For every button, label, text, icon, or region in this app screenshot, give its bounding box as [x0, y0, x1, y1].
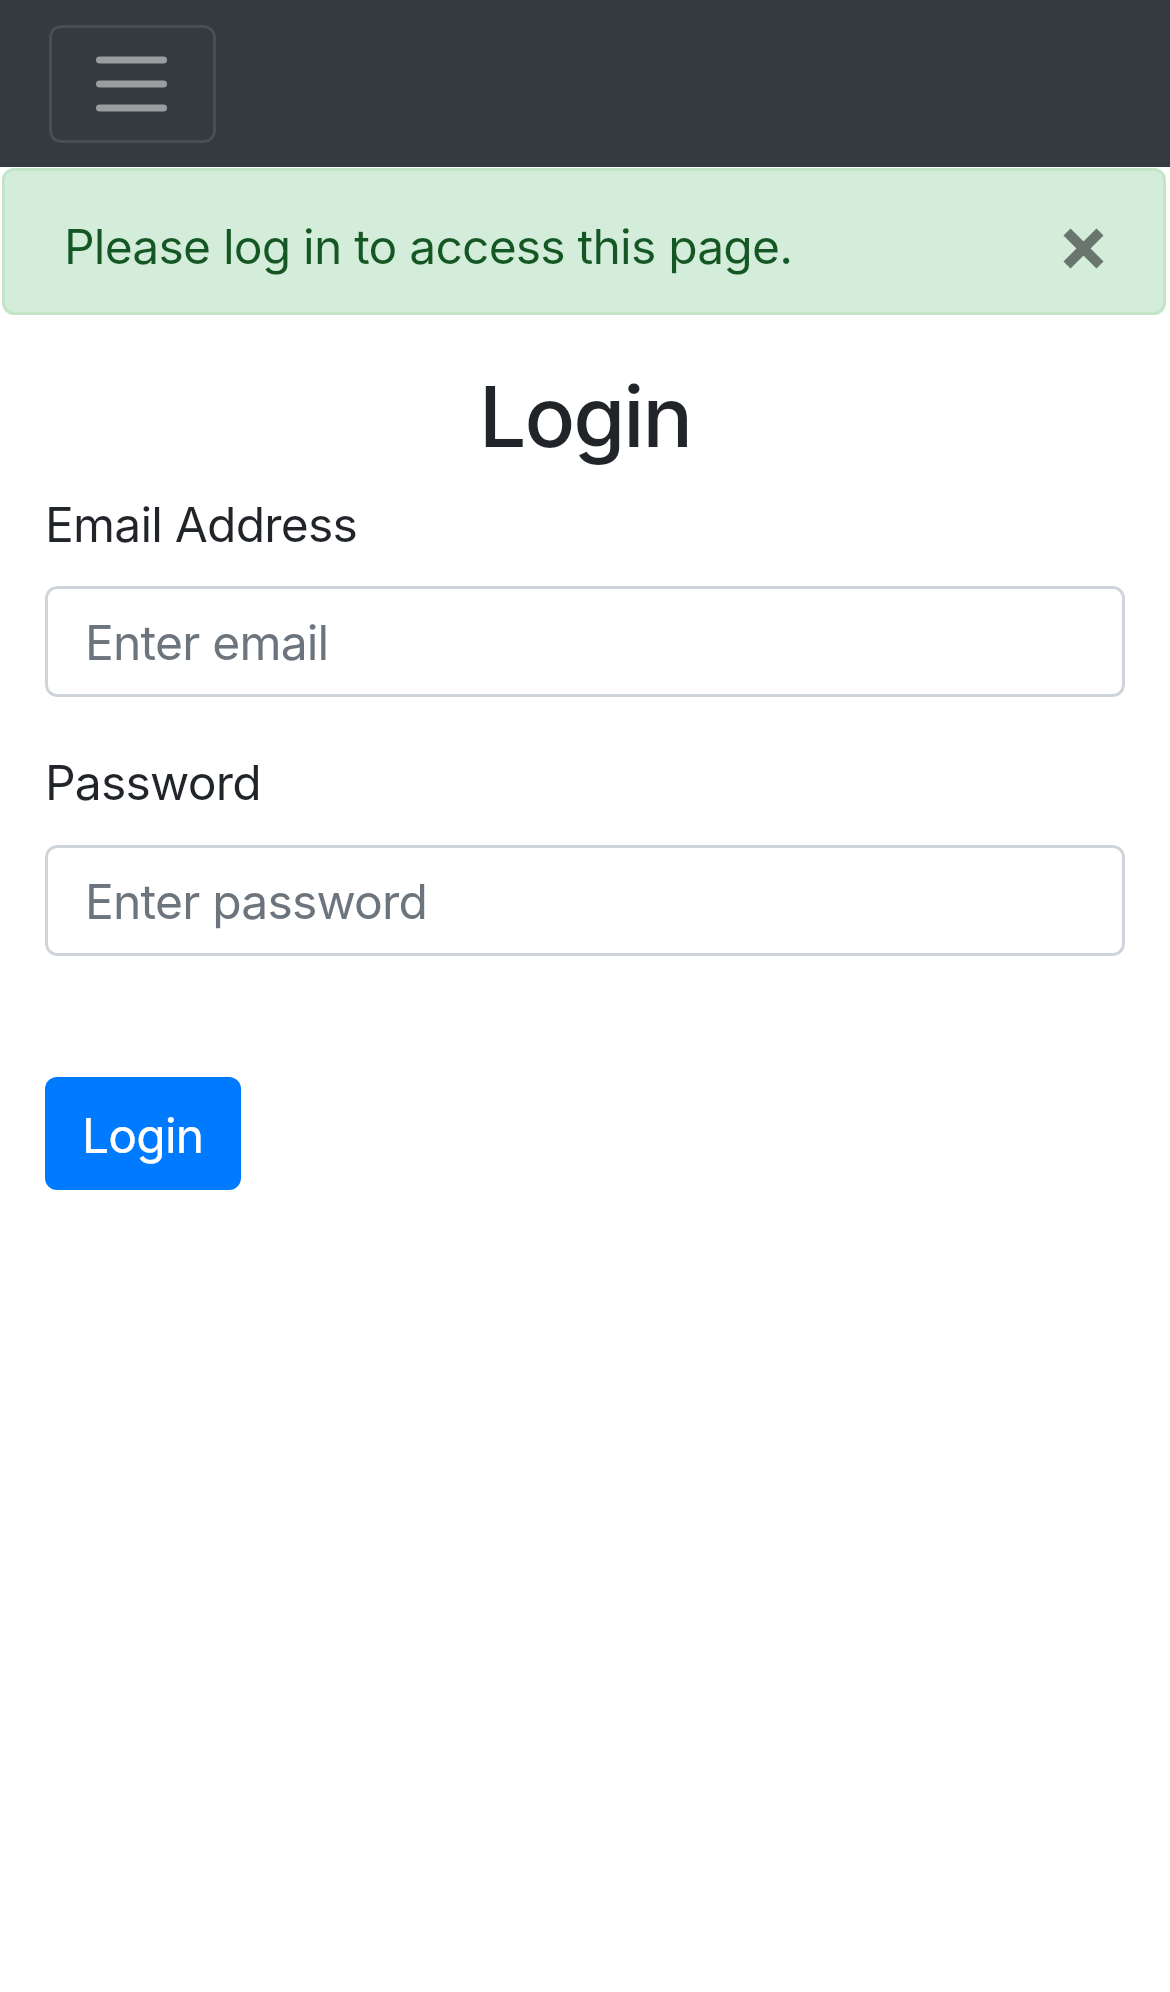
button[interactable]: Enter password: [45, 845, 1125, 956]
button[interactable]: Enter email: [45, 586, 1125, 697]
staticText: Password: [45, 753, 261, 811]
staticText: Login: [82, 1106, 204, 1164]
staticText: Enter email: [85, 613, 329, 671]
staticText: Login: [479, 366, 691, 468]
button[interactable]: Login: [45, 1077, 241, 1190]
button[interactable]: [49, 25, 216, 143]
staticText: Please log in to access this page.: [64, 217, 793, 275]
staticText: Enter password: [85, 872, 428, 930]
staticText: Email Address: [45, 495, 358, 553]
button[interactable]: [1058, 223, 1108, 273]
